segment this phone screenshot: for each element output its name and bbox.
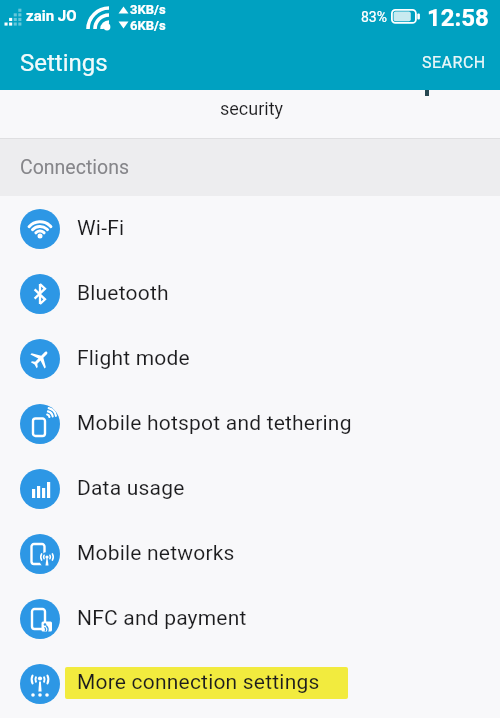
button[interactable]: Bluetooth [0, 261, 500, 326]
staticText: Mobile networks [77, 541, 235, 566]
staticText: zain JO [26, 7, 77, 25]
button[interactable]: Data usage [0, 456, 500, 521]
staticText: 83% [361, 9, 387, 25]
button[interactable]: Mobile hotspot and tethering [0, 391, 500, 456]
staticText: security [220, 98, 284, 119]
staticText: Flight mode [77, 346, 190, 371]
staticText: Mobile hotspot and tethering [77, 411, 352, 436]
staticText: Data usage [77, 476, 185, 501]
staticText: 12:58 [427, 4, 489, 32]
button[interactable]: SEARCH [416, 47, 492, 78]
staticText: Connections [20, 156, 129, 179]
button[interactable]: NFC and payment [0, 586, 500, 651]
staticText: SEARCH [422, 53, 486, 72]
staticText: Settings [20, 49, 108, 77]
staticText: Bluetooth [77, 281, 169, 306]
button[interactable]: Mobile networks [0, 521, 500, 586]
staticText: 6KB/s [130, 18, 166, 33]
staticText: More connection settings [77, 670, 320, 695]
button[interactable]: More connection settings [0, 651, 500, 716]
staticText: NFC and payment [77, 606, 247, 631]
button[interactable]: Flight mode [0, 326, 500, 391]
staticText: Wi-Fi [77, 216, 125, 241]
button[interactable]: Wi-Fi [0, 196, 500, 261]
staticText: 3KB/s [130, 2, 166, 17]
